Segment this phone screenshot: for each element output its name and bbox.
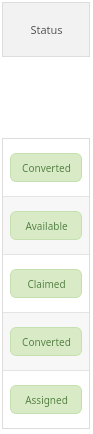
button[interactable]: Available: [10, 211, 82, 240]
staticText: Assigned: [25, 393, 68, 407]
button[interactable]: Converted: [10, 153, 82, 182]
button[interactable]: Claimed: [10, 269, 82, 298]
staticText: Converted: [22, 161, 71, 175]
button[interactable]: Available: [3, 197, 89, 254]
button[interactable]: Converted: [10, 327, 82, 356]
button[interactable]: Status: [2, 2, 90, 57]
button[interactable]: Converted: [3, 139, 89, 196]
staticText: Converted: [22, 335, 71, 349]
button[interactable]: Assigned: [3, 371, 89, 428]
button[interactable]: Assigned: [10, 385, 82, 414]
staticText: Claimed: [27, 277, 66, 291]
staticText: Available: [25, 219, 68, 233]
button[interactable]: Claimed: [3, 255, 89, 312]
button[interactable]: Converted: [3, 313, 89, 370]
staticText: Status: [30, 22, 63, 37]
